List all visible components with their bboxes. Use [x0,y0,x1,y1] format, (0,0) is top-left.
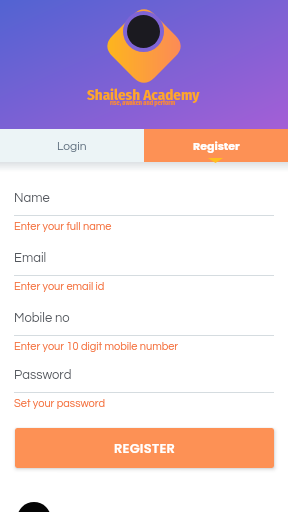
staticText: Shailesh Academy [87,86,200,104]
button[interactable]: Register [144,129,288,162]
staticText: Name [14,191,50,204]
button[interactable]: REGISTER [15,428,274,468]
staticText: Mobile no [14,311,70,324]
staticText: Enter your full name [14,221,112,232]
staticText: REGISTER [114,439,176,457]
staticText: rise, awaken and perform [110,99,176,106]
staticText: Register [193,138,240,153]
staticText: Password [14,368,72,381]
button[interactable]: Name [14,191,274,233]
button[interactable]: Mobile no [14,311,274,353]
button[interactable]: Email [14,251,274,293]
staticText: Set your password [14,398,105,409]
staticText: Enter your email id [14,281,105,292]
staticText: Email [14,251,47,264]
staticText: Enter your 10 digit mobile number [14,341,179,352]
button[interactable]: Login [0,129,144,162]
staticText: Login [57,140,87,152]
button[interactable]: Password [14,368,274,410]
